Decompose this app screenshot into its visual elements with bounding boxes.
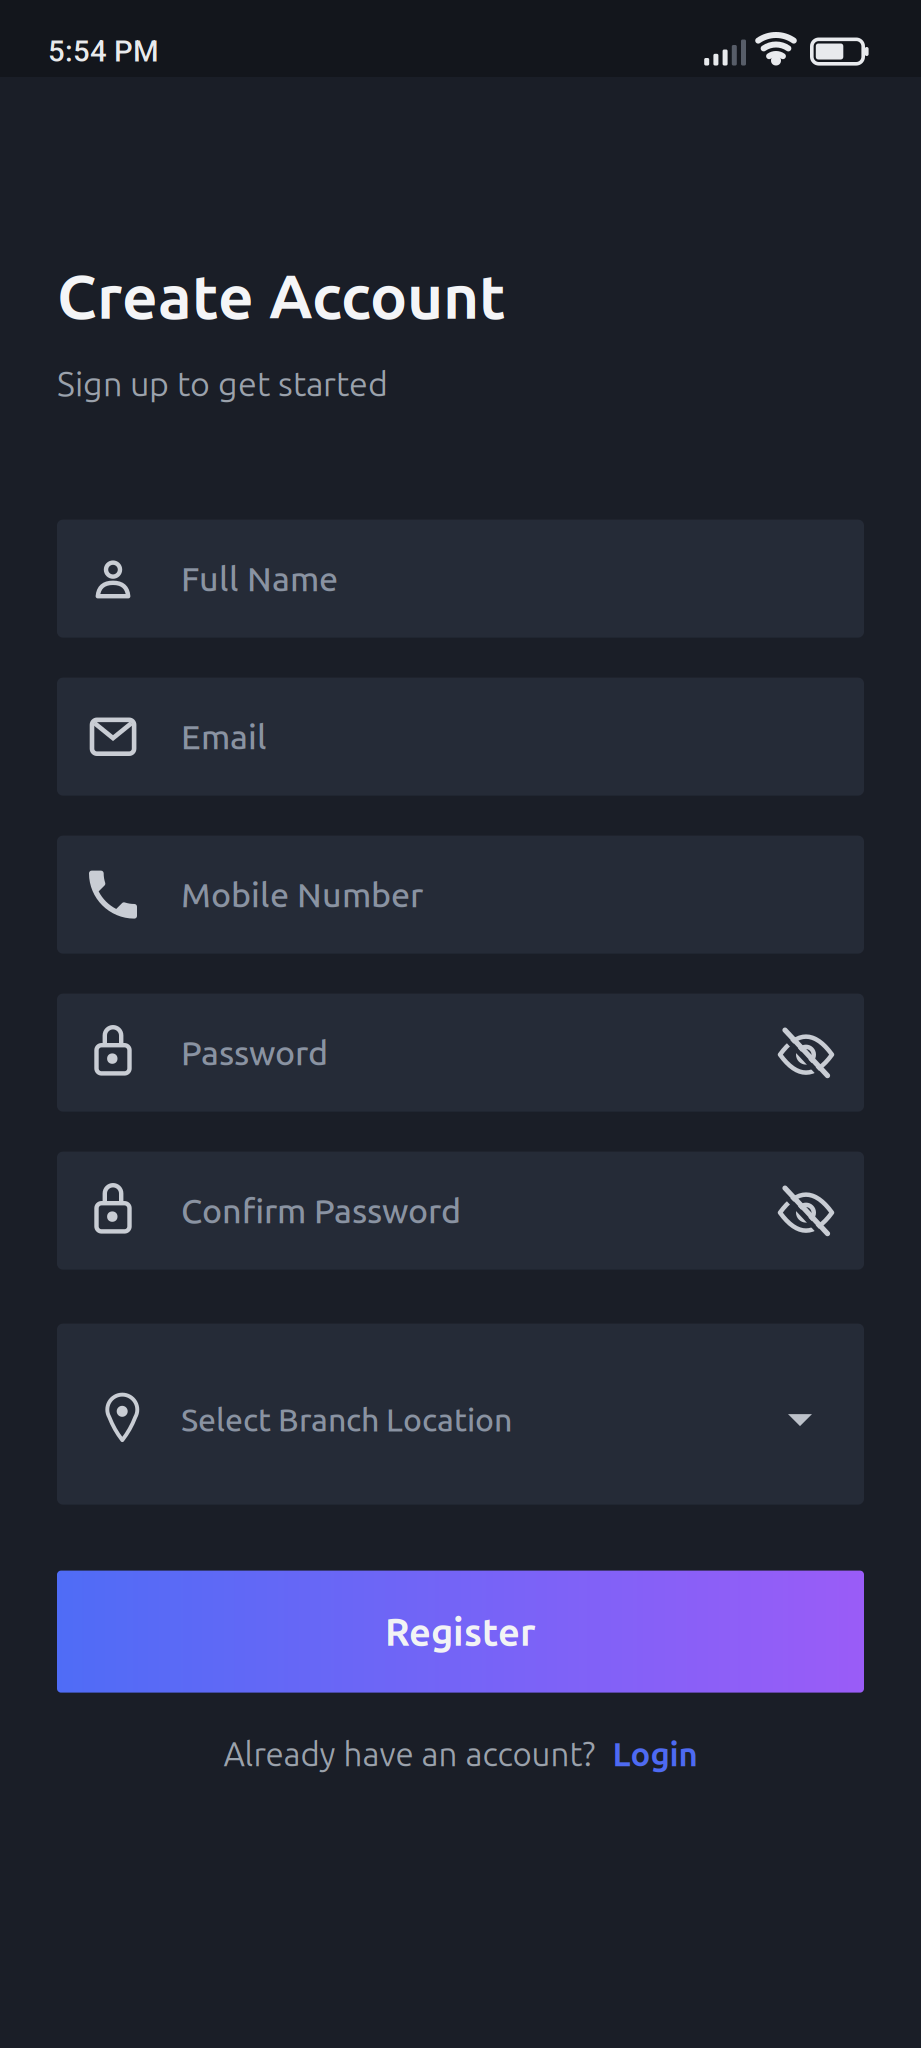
- button[interactable]: Select Branch Location: [57, 1324, 864, 1505]
- staticText: Already have an account?: [223, 1736, 595, 1773]
- staticText: Select Branch Location: [181, 1402, 512, 1438]
- staticText: Email: [181, 718, 267, 756]
- button[interactable]: Login: [595, 1736, 697, 1773]
- button[interactable]: Register: [57, 1571, 864, 1693]
- button[interactable]: Email: [57, 678, 864, 796]
- staticText: Login: [612, 1736, 697, 1773]
- staticText: Full Name: [181, 560, 338, 598]
- staticText: Create Account: [57, 261, 506, 330]
- staticText: Confirm Password: [181, 1192, 461, 1230]
- button[interactable]: Password: [57, 994, 864, 1112]
- button[interactable]: Show password: [778, 1025, 834, 1081]
- staticText: Sign up to get started: [57, 364, 388, 403]
- button[interactable]: Mobile Number: [57, 836, 864, 954]
- staticText: Register: [385, 1610, 536, 1653]
- staticText: Mobile Number: [181, 876, 423, 914]
- staticText: Password: [181, 1034, 328, 1072]
- staticText: 5:54 PM: [48, 34, 159, 69]
- button[interactable]: Confirm Password: [57, 1152, 864, 1270]
- button[interactable]: Full Name: [57, 520, 864, 638]
- button[interactable]: Show confirm password: [778, 1183, 834, 1239]
